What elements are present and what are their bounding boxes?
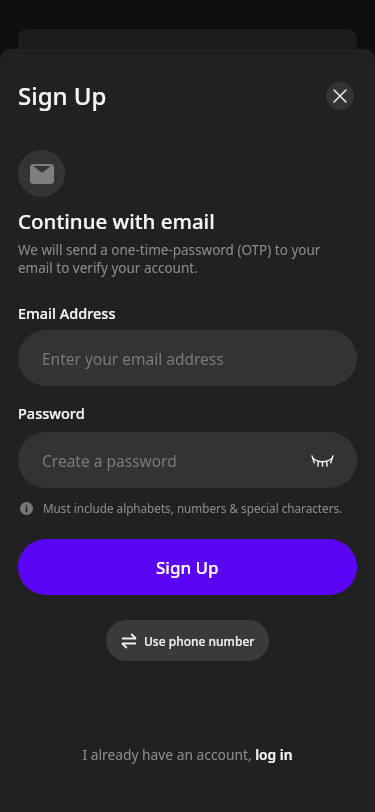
button[interactable]: Show password (309, 447, 335, 473)
button[interactable]: I already have an account, log in (82, 745, 293, 764)
button[interactable]: Use phone number (106, 620, 269, 661)
staticText: Create a password (42, 450, 177, 471)
staticText: Use phone number (144, 633, 255, 649)
button[interactable]: Sign Up (18, 539, 357, 595)
staticText: Must include alphabets, numbers & specia… (43, 500, 343, 516)
button[interactable]: Enter your email address (18, 330, 357, 386)
staticText: Sign Up (156, 556, 219, 579)
button[interactable]: Close (326, 82, 354, 110)
staticText: Enter your email address (42, 348, 224, 369)
staticText: We will send a one-time-password (OTP) t… (18, 241, 321, 277)
staticText: Email Address (18, 303, 116, 323)
button[interactable]: Create a password (18, 432, 357, 488)
staticText: Continue with email (18, 207, 215, 235)
staticText: Sign Up (18, 79, 107, 112)
staticText: Password (18, 403, 85, 423)
